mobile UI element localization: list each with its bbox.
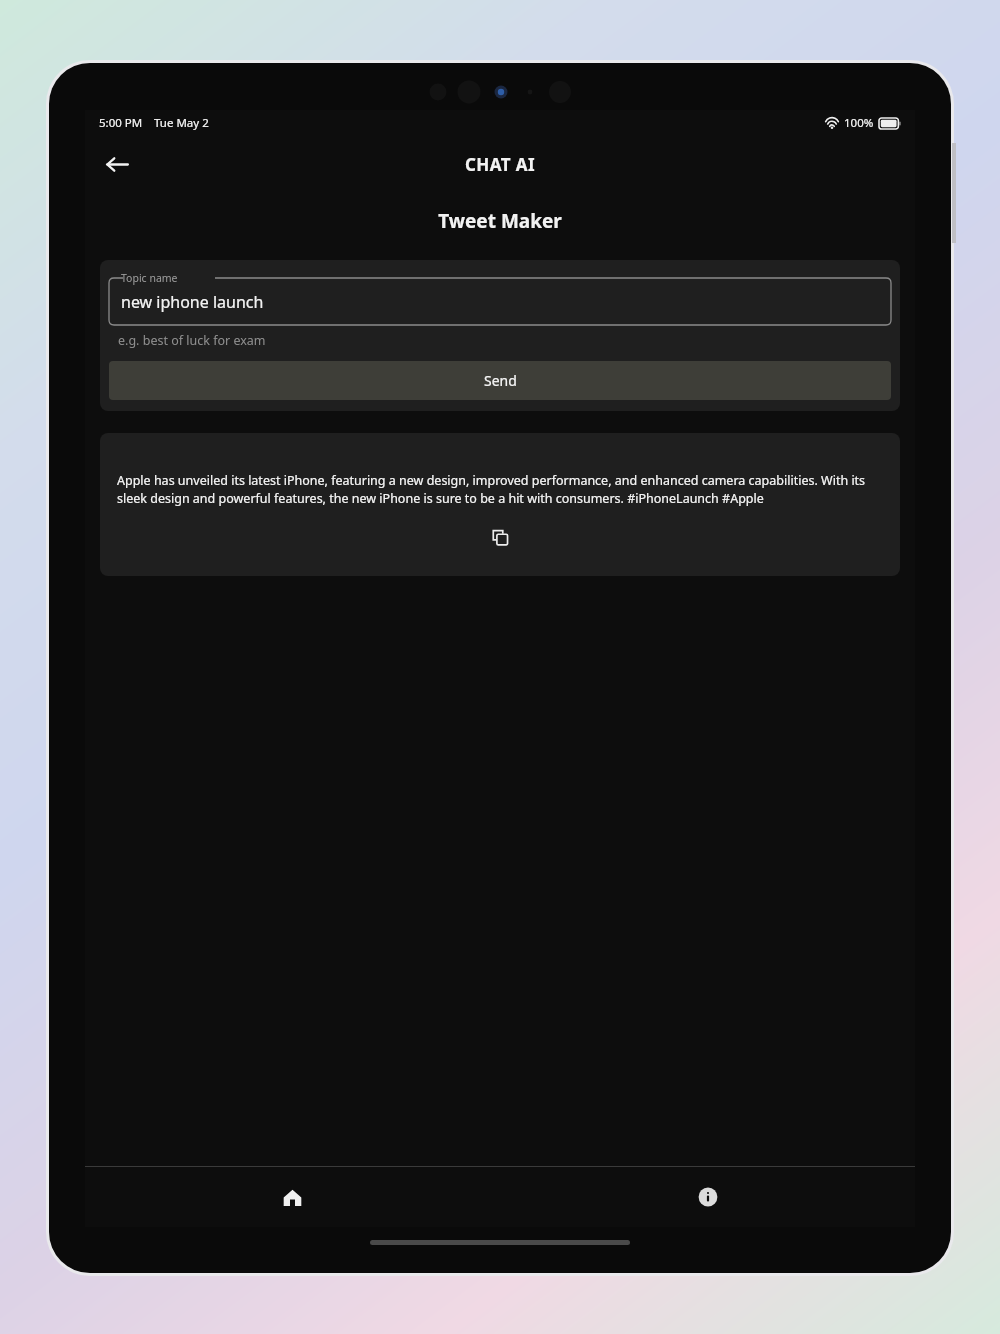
button[interactable]: Home <box>85 1167 500 1227</box>
staticText: e.g. best of luck for exam <box>118 332 266 349</box>
staticText: Tweet Maker <box>85 208 915 234</box>
staticText: 100% <box>844 115 874 131</box>
staticText: 5:00 PM <box>99 115 143 131</box>
staticText: Topic name <box>121 271 178 285</box>
staticText: new iphone launch <box>121 291 264 313</box>
button[interactable]: Info <box>500 1167 915 1227</box>
button[interactable]: Back <box>95 142 139 186</box>
staticText: Send <box>484 371 517 390</box>
button[interactable]: Copy <box>483 520 517 554</box>
staticText: Apple has unveiled its latest iPhone, fe… <box>117 472 883 507</box>
button[interactable]: Send <box>109 361 891 400</box>
staticText: Tue May 2 <box>154 115 209 131</box>
staticText: CHAT AI <box>465 153 535 176</box>
